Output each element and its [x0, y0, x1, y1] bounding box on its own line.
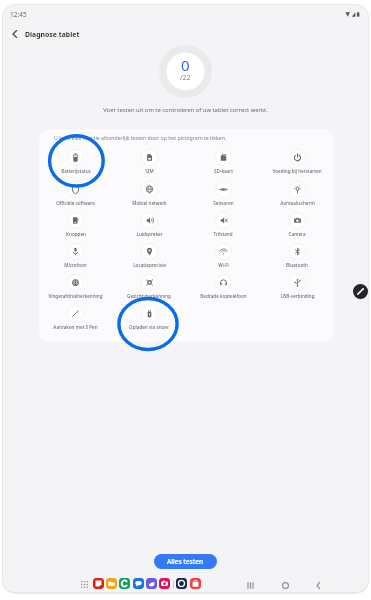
- button[interactable]: Aanraakscherm: [260, 179, 334, 210]
- staticText: Sensoren: [213, 200, 234, 206]
- staticText: Opladen via snoer: [129, 324, 169, 330]
- button[interactable]: App 3: [119, 578, 130, 589]
- button[interactable]: App 6: [159, 578, 170, 589]
- staticText: Vingerafdrukherkenning: [48, 293, 103, 299]
- button[interactable]: Microfoon: [39, 241, 112, 272]
- button[interactable]: Mobiel netwerk: [112, 179, 186, 210]
- staticText: Trilstand: [213, 231, 233, 237]
- staticText: Wi-Fi: [218, 262, 229, 268]
- button[interactable]: App 8: [190, 578, 201, 589]
- button[interactable]: App 4: [133, 578, 144, 589]
- button[interactable]: Gezichtsherkenning: [112, 272, 186, 303]
- button[interactable]: Locatieprecisie: [112, 241, 186, 272]
- button[interactable]: Bedrade koptelefoon: [186, 272, 260, 303]
- button[interactable]: Vingerafdrukherkenning: [39, 272, 112, 303]
- staticText: Voer testen uit om te controleren of uw …: [3, 106, 368, 114]
- staticText: Batterijstatus: [61, 168, 91, 174]
- staticText: Camera: [288, 231, 306, 237]
- button[interactable]: USB-verbinding: [260, 272, 334, 303]
- button[interactable]: Trilstand: [186, 210, 260, 241]
- button[interactable]: Back: [8, 27, 22, 41]
- staticText: Luidspreker: [136, 231, 163, 237]
- button[interactable]: SIM: [112, 147, 186, 178]
- staticText: Locatieprecisie: [133, 262, 166, 268]
- staticText: Aanraken met S Pen: [53, 324, 98, 330]
- staticText: Diagnose tablet: [25, 30, 80, 39]
- staticText: Microfoon: [64, 262, 87, 268]
- staticText: Aanraakscherm: [280, 200, 315, 206]
- staticText: Mobiel netwerk: [132, 200, 167, 206]
- staticText: /22: [180, 73, 191, 83]
- button[interactable]: Sensoren: [186, 179, 260, 210]
- button[interactable]: Voeding bij herstarten: [260, 147, 334, 178]
- button[interactable]: Alles testen: [154, 554, 217, 569]
- button[interactable]: Bluetooth: [260, 241, 334, 272]
- button[interactable]: Batterijstatus: [39, 147, 112, 178]
- button[interactable]: Back: [310, 577, 326, 592]
- staticText: SIM: [145, 168, 154, 174]
- button[interactable]: Recents: [242, 577, 258, 592]
- button[interactable]: Camera: [260, 210, 334, 241]
- button[interactable]: Officiële software: [39, 179, 112, 210]
- button[interactable]: App 2: [106, 578, 117, 589]
- button[interactable]: App 1: [93, 578, 104, 589]
- button[interactable]: Luidspreker: [112, 210, 186, 241]
- staticText: Gezichtsherkenning: [127, 293, 171, 299]
- staticText: 12:45: [10, 10, 27, 19]
- button[interactable]: Wi-Fi: [186, 241, 260, 272]
- button[interactable]: App 7: [176, 578, 187, 589]
- button[interactable]: Opladen via snoer: [112, 303, 186, 334]
- button[interactable]: Knoppen: [39, 210, 112, 241]
- staticText: Knoppen: [66, 231, 86, 237]
- button[interactable]: All apps: [78, 578, 90, 590]
- button[interactable]: Edit: [353, 284, 368, 299]
- button[interactable]: App 5: [146, 578, 157, 589]
- staticText: SD-kaart: [214, 168, 233, 174]
- staticText: Officiële software: [56, 200, 95, 206]
- button[interactable]: Aanraken met S Pen: [39, 303, 112, 334]
- staticText: Bedrade koptelefoon: [200, 293, 247, 299]
- staticText: U kunt elke functie afzonderlijk testen …: [54, 134, 322, 141]
- staticText: Bluetooth: [286, 262, 308, 268]
- button[interactable]: Home: [277, 577, 293, 592]
- staticText: USB-verbinding: [280, 293, 315, 299]
- button[interactable]: SD-kaart: [186, 147, 260, 178]
- staticText: 0: [181, 55, 190, 75]
- staticText: Alles testen: [167, 557, 204, 566]
- staticText: Voeding bij herstarten: [272, 168, 322, 174]
